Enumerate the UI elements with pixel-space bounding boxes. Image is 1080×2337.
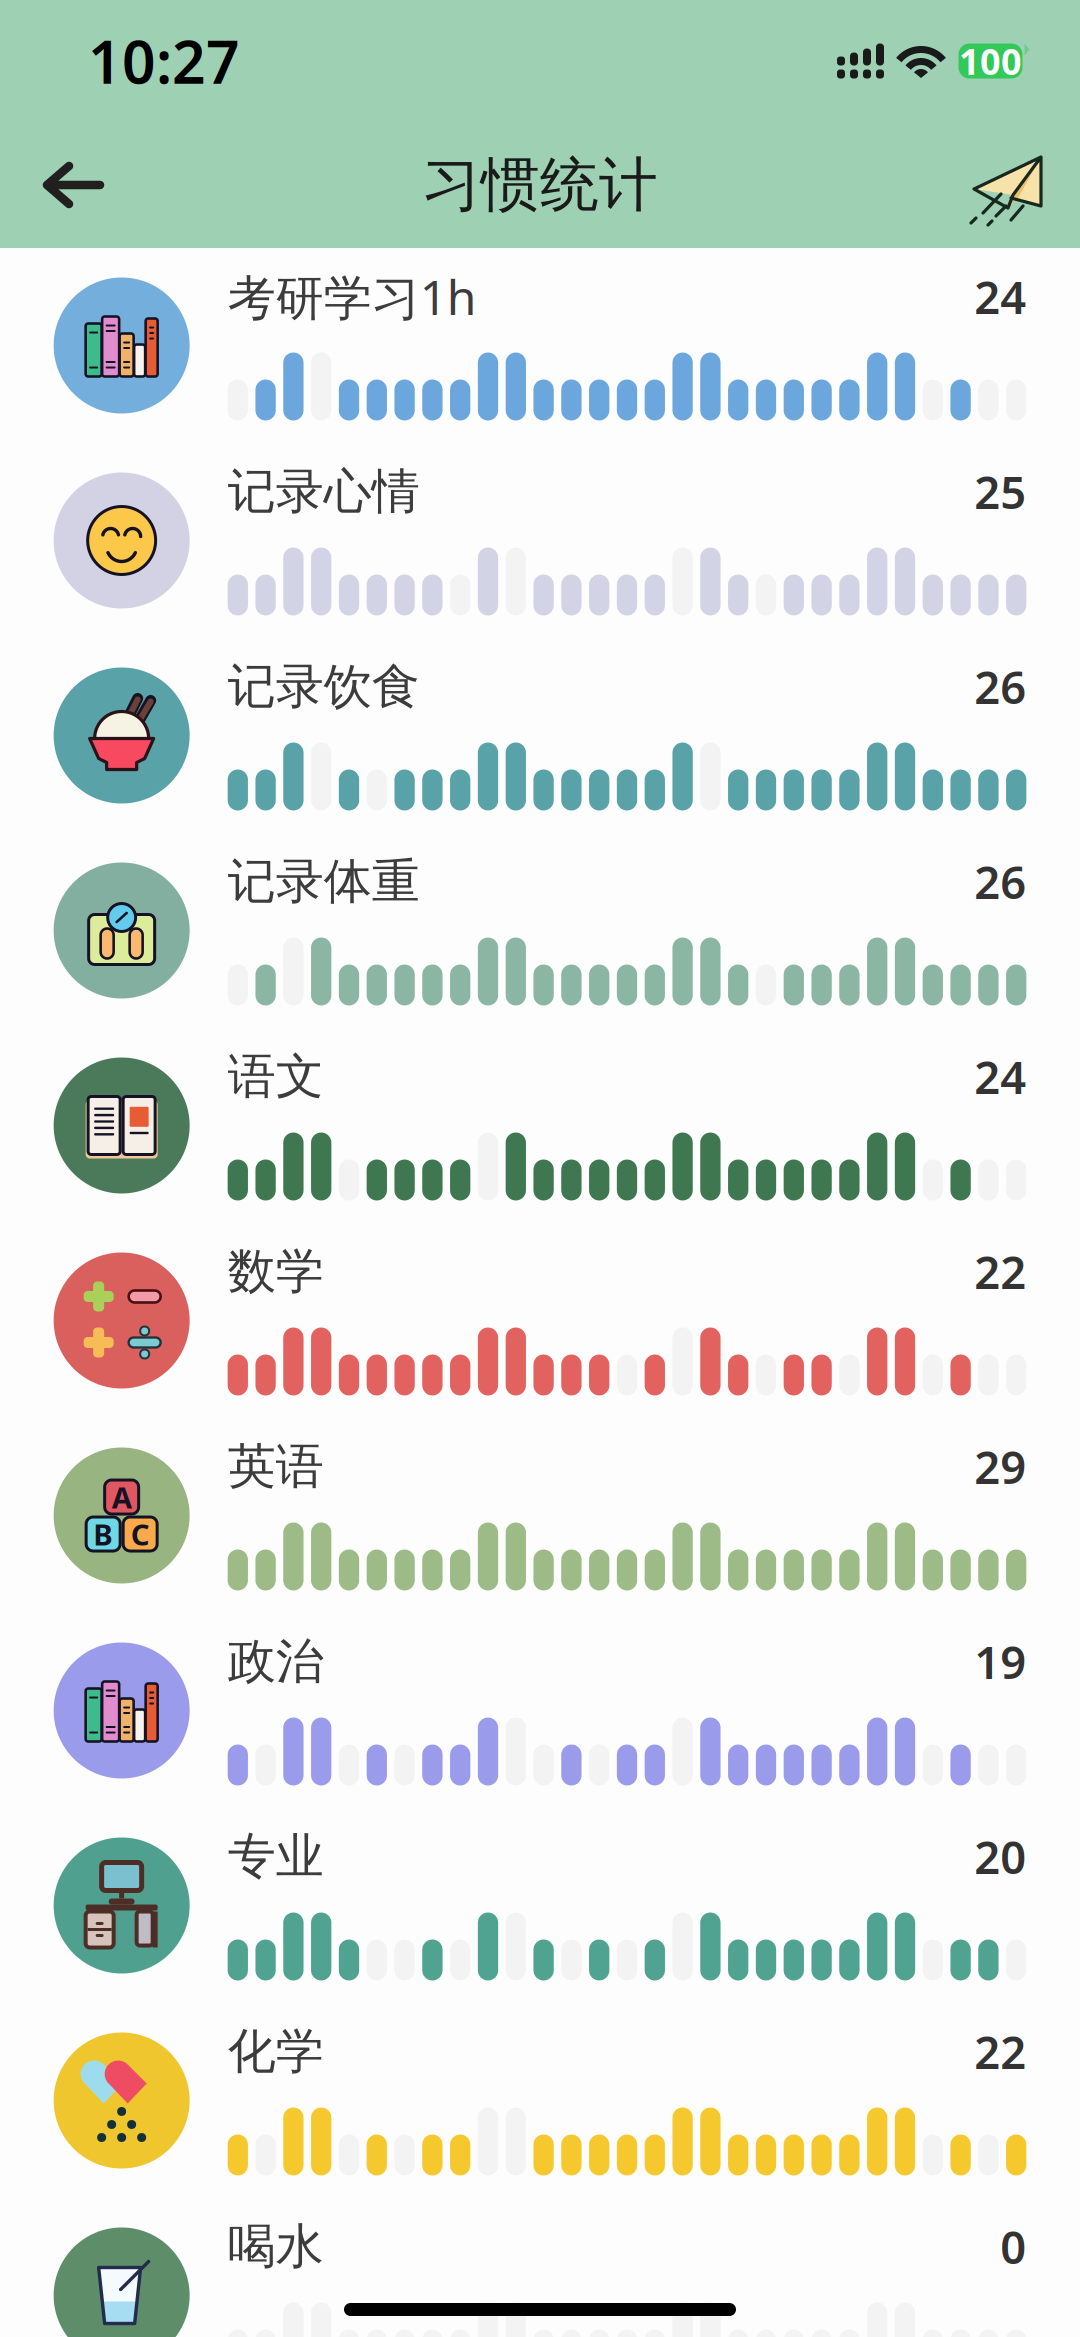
staticText: 记录体重 [228,852,420,911]
staticText: 24 [974,1046,1026,1107]
button[interactable]: Back [42,163,104,207]
staticText: 26 [974,851,1026,912]
staticText: 20 [974,1826,1026,1887]
staticText: 29 [974,1436,1026,1497]
button[interactable]: 记录饮食 [0,638,1080,833]
staticText: 专业 [228,1827,324,1886]
staticText: 24 [974,266,1026,327]
staticText: 数学 [228,1242,324,1301]
staticText: 25 [974,461,1026,522]
button[interactable]: 考研学习1h [0,248,1080,443]
button[interactable]: 专业 [0,1808,1080,2003]
button[interactable]: 记录体重 [0,833,1080,1028]
button[interactable]: 化学 [0,2003,1080,2198]
staticText: B [93,1514,113,1553]
staticText: 100 [959,37,1022,85]
staticText: 考研学习1h [228,265,477,328]
staticText: 化学 [228,2022,324,2081]
staticText: 19 [974,1631,1026,1692]
staticText: A [112,1477,132,1516]
button[interactable]: A [0,1418,1080,1613]
staticText: C [131,1514,150,1553]
staticText: 22 [974,2021,1026,2082]
button[interactable]: Share [970,139,1050,231]
staticText: 10:27 [88,22,240,100]
button[interactable]: 喝水 [0,2198,1080,2337]
button[interactable]: 数学 [0,1223,1080,1418]
staticText: 记录心情 [228,462,420,521]
staticText: 英语 [228,1437,324,1496]
staticText: 记录饮食 [228,657,420,716]
staticText: 语文 [228,1047,324,1106]
staticText: 习惯统计 [422,149,658,221]
staticText: 政治 [228,1632,324,1691]
staticText: 26 [974,656,1026,717]
staticText: 喝水 [228,2217,324,2276]
button[interactable]: 政治 [0,1613,1080,1808]
staticText: 22 [974,1241,1026,1302]
button[interactable]: 语文 [0,1028,1080,1223]
button[interactable]: 记录心情 [0,443,1080,638]
staticText: 0 [1000,2216,1026,2277]
